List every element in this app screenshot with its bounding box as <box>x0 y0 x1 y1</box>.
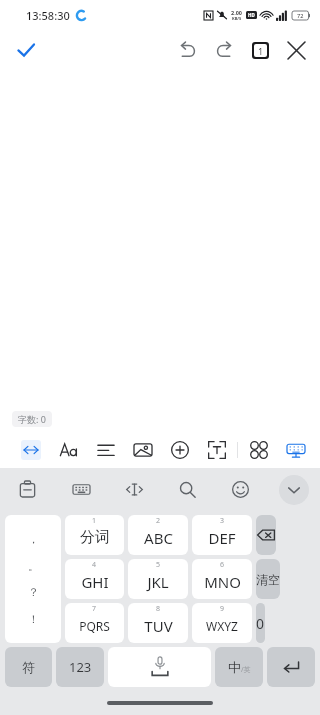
staticText: 7 <box>92 604 97 614</box>
staticText: 2 <box>156 516 161 526</box>
staticText: 1 <box>258 45 264 57</box>
staticText: 字数: 0 <box>18 413 46 425</box>
staticText: ！ <box>28 612 39 626</box>
button[interactable]: More <box>240 432 277 468</box>
staticText: 分词 <box>80 528 110 547</box>
staticText: 5 <box>156 560 161 570</box>
button[interactable]: Close <box>278 32 314 68</box>
button[interactable]: 2 <box>128 515 188 555</box>
button[interactable]: 字数: 0 <box>12 411 52 427</box>
staticText: 6 <box>220 560 225 570</box>
button[interactable]: 5 <box>128 559 188 599</box>
button[interactable]: Add <box>161 432 198 468</box>
button[interactable]: 3 <box>192 515 252 555</box>
button[interactable]: Clipboard <box>0 468 54 511</box>
staticText: TUV <box>144 616 173 636</box>
staticText: 123 <box>69 658 92 676</box>
staticText: 13:58:30 <box>26 8 70 23</box>
staticText: 4 <box>92 560 97 570</box>
button[interactable]: 9 <box>192 603 252 643</box>
button[interactable]: Keyboard <box>277 432 314 468</box>
staticText: ABC <box>144 528 173 548</box>
button[interactable]: Insert width <box>12 432 50 468</box>
button[interactable]: 7 <box>65 603 124 643</box>
button[interactable]: Clear <box>256 559 280 599</box>
staticText: 。 <box>28 559 39 573</box>
staticText: PQRS <box>79 618 110 634</box>
staticText: 2.00 <box>231 9 242 16</box>
button[interactable]: Pages <box>242 32 278 68</box>
button[interactable]: Keyboard layout <box>54 468 108 511</box>
button[interactable]: Font <box>50 432 87 468</box>
staticText: WXYZ <box>206 618 238 634</box>
staticText: 8 <box>156 604 161 614</box>
staticText: 0 <box>256 614 265 633</box>
button[interactable]: Hide keyboard <box>267 468 320 511</box>
button[interactable]: Confirm <box>8 32 44 68</box>
button[interactable]: Redo <box>206 32 242 68</box>
button[interactable]: 1 <box>65 515 124 555</box>
button[interactable]: Backspace <box>256 515 276 555</box>
staticText: GHI <box>81 572 109 592</box>
button[interactable]: Image <box>124 432 161 468</box>
button[interactable]: Search <box>161 468 214 511</box>
staticText: /英 <box>241 665 251 675</box>
staticText: 72 <box>297 12 304 19</box>
button[interactable]: Space <box>108 647 211 687</box>
button[interactable]: 6 <box>192 559 252 599</box>
button[interactable]: Chinese English toggle <box>215 647 263 687</box>
button[interactable]: ， <box>5 515 61 643</box>
staticText: JKL <box>147 572 169 592</box>
button[interactable]: Symbols <box>5 647 52 687</box>
staticText: KB/S <box>232 16 242 21</box>
staticText: 清空 <box>256 572 280 587</box>
button[interactable]: 8 <box>128 603 188 643</box>
button[interactable]: Undo <box>170 32 206 68</box>
button[interactable]: 4 <box>65 559 124 599</box>
button[interactable]: Numbers <box>56 647 104 687</box>
button[interactable]: Enter <box>267 647 315 687</box>
button[interactable]: Emoji <box>214 468 267 511</box>
staticText: HD <box>248 12 255 18</box>
staticText: 中 <box>228 659 241 675</box>
staticText: 3 <box>220 516 225 526</box>
staticText: ， <box>28 532 39 546</box>
staticText: 符 <box>22 659 35 675</box>
staticText: ？ <box>28 585 39 599</box>
staticText: 9 <box>220 604 225 614</box>
button[interactable]: Align <box>87 432 124 468</box>
button[interactable]: Scan text <box>198 432 235 468</box>
staticText: DEF <box>208 528 236 548</box>
button[interactable]: Cursor <box>108 468 161 511</box>
staticText: MNO <box>204 572 241 592</box>
button[interactable]: 0 <box>256 603 265 643</box>
staticText: 1 <box>92 516 97 526</box>
